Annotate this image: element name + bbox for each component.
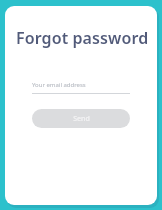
staticText: Your email address [32, 81, 86, 89]
staticText: Forgot password [16, 27, 149, 49]
button[interactable]: Your email address [32, 81, 130, 94]
button[interactable]: Send [32, 109, 130, 128]
staticText: Send [73, 114, 90, 124]
